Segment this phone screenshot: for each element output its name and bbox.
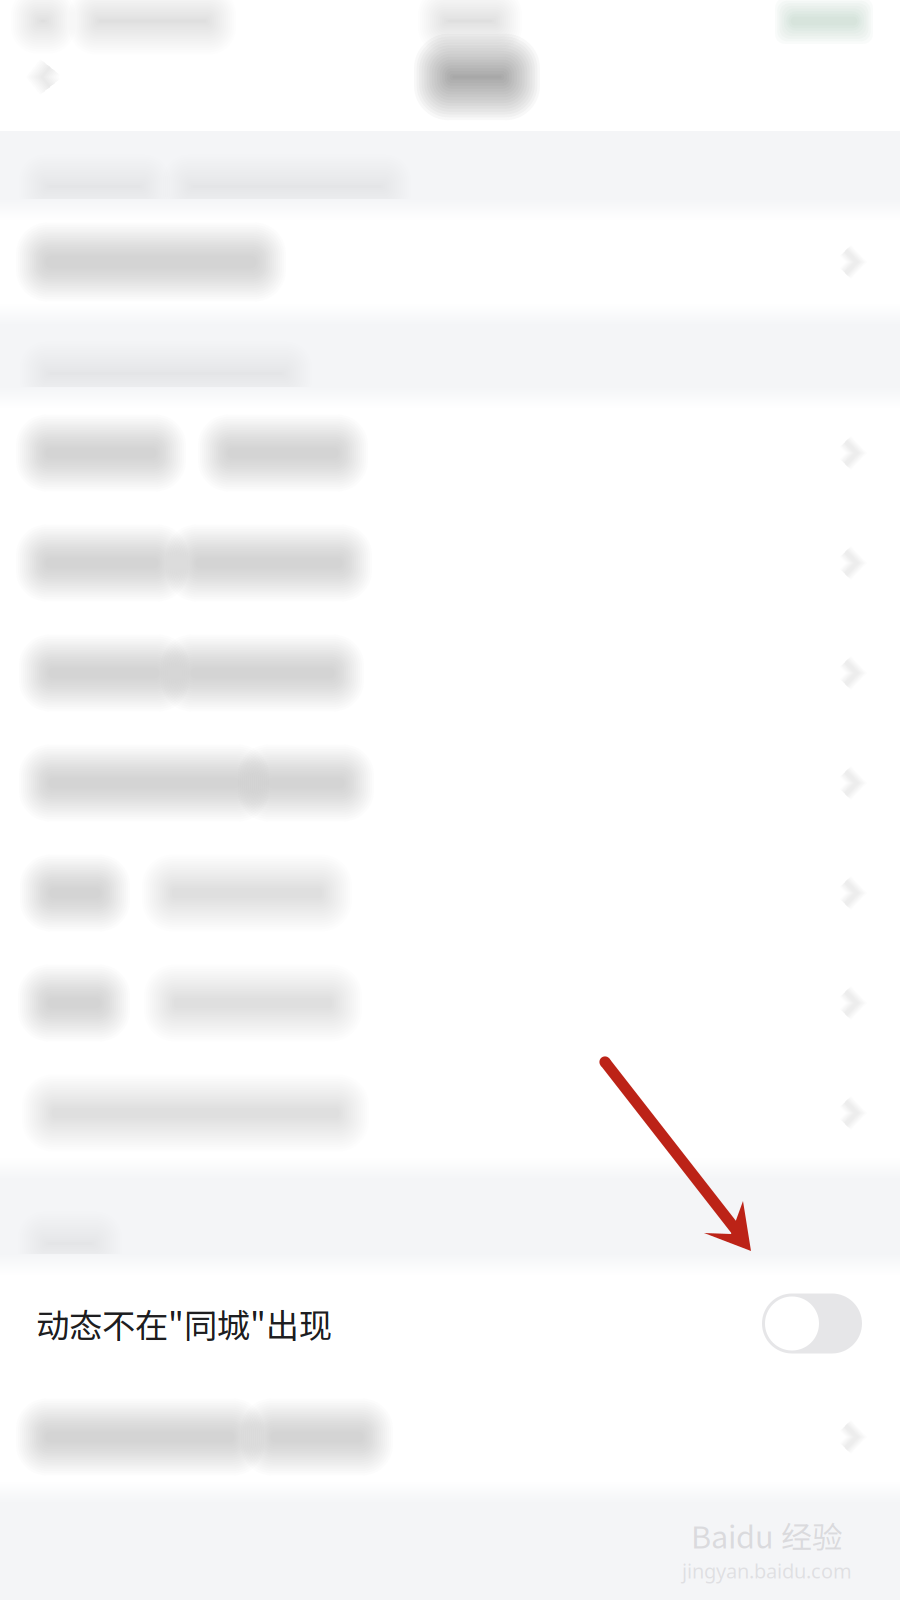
button[interactable] <box>0 1382 900 1492</box>
button[interactable] <box>0 508 900 618</box>
button[interactable] <box>0 618 900 728</box>
button[interactable] <box>0 948 900 1058</box>
button[interactable] <box>0 398 900 508</box>
button[interactable] <box>0 1058 900 1168</box>
button[interactable] <box>0 838 900 948</box>
button[interactable]: 动态不在"同城"出现 <box>0 1265 900 1382</box>
staticText: 动态不在"同城"出现 <box>36 1299 332 1348</box>
button[interactable] <box>0 210 900 314</box>
staticText: jingyan.baidu.com <box>682 1557 852 1584</box>
staticText: Baidu 经验 <box>691 1513 843 1557</box>
button[interactable]: Back <box>0 42 92 112</box>
button[interactable] <box>0 728 900 838</box>
